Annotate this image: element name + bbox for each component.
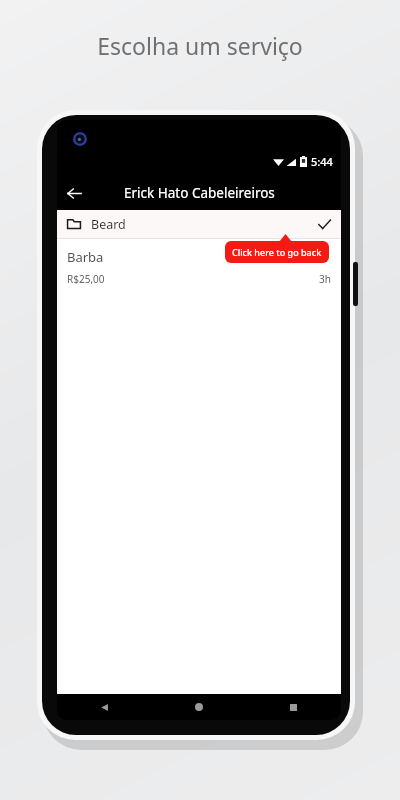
staticText: 5:44: [311, 154, 333, 169]
staticText: 3h: [319, 272, 331, 286]
staticText: Barba: [67, 248, 104, 266]
staticText: Escolha um serviço: [0, 30, 400, 61]
button[interactable]: Back: [57, 176, 91, 210]
button[interactable]: Barba: [57, 239, 341, 296]
button[interactable]: Back: [57, 694, 151, 720]
staticText: Beard: [91, 216, 126, 233]
button[interactable]: Recent apps: [246, 694, 341, 720]
staticText: Click here to go back: [232, 246, 322, 258]
staticText: Erick Hato Cabeleireiros: [124, 184, 275, 202]
staticText: R$25,00: [67, 272, 105, 286]
button[interactable]: Home: [151, 694, 246, 720]
button[interactable]: Click here to go back: [225, 241, 329, 263]
button[interactable]: Beard: [57, 210, 341, 238]
